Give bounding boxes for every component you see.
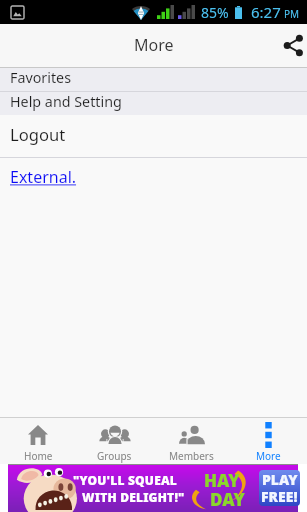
staticText: Logout [10,123,66,146]
staticText: Groups [97,449,132,463]
button[interactable]: More [230,418,307,464]
staticText: Members [169,449,214,463]
staticText: Home [24,449,53,463]
staticText: "YOU'LL SQUEAL [73,472,178,488]
button[interactable]: Share [269,24,307,67]
staticText: More [134,34,174,56]
staticText: PLAY [262,470,298,489]
staticText: HAY [204,469,240,492]
staticText: More [256,449,281,463]
button[interactable]: Favorites [0,68,307,91]
button[interactable]: Groups [76,418,153,464]
staticText: FREE! [261,487,298,504]
staticText: PM [284,7,300,21]
staticText: 85% [201,3,229,22]
button[interactable]: "YOU'LL SQUEAL [8,464,298,512]
button[interactable]: External. [0,158,307,196]
button[interactable]: PLAY [259,470,300,506]
button[interactable]: Logout [0,115,307,157]
button[interactable]: Home [0,418,76,464]
staticText: Help and Setting [10,92,122,111]
staticText: WITH DELIGHT!" [82,489,185,505]
staticText: Favorites [10,68,72,87]
staticText: External. [10,166,77,188]
staticText: 6:27 [251,2,281,22]
staticText: DAY [210,488,245,511]
button[interactable]: Members [153,418,230,464]
button[interactable]: Help and Setting [0,92,307,115]
